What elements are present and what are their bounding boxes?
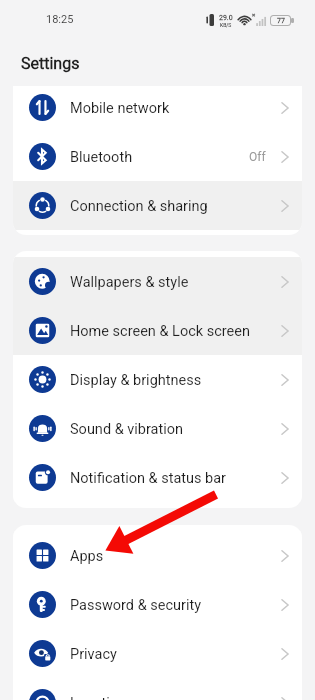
staticText: Apps (70, 548, 104, 565)
staticText: 29.0 (219, 14, 233, 22)
button[interactable]: Privacy (13, 629, 302, 678)
staticText: 77 (277, 17, 285, 25)
staticText: Settings (21, 54, 80, 73)
button[interactable]: Mobile network (13, 86, 302, 132)
staticText: Privacy (70, 646, 117, 663)
staticText: KB/S (220, 22, 232, 28)
staticText: Location (70, 695, 127, 700)
staticText: Notification & status bar (70, 470, 227, 487)
button[interactable]: Bluetooth (13, 132, 302, 181)
staticText: Bluetooth (70, 149, 133, 166)
staticText: Wallpapers & style (70, 274, 189, 291)
staticText: Sound & vibration (70, 421, 184, 438)
button[interactable]: Display & brightness (13, 355, 302, 404)
staticText: 18:25 (46, 13, 74, 26)
button[interactable]: Connection & sharing (13, 181, 302, 230)
button[interactable]: Notification & status bar (13, 453, 302, 502)
staticText: Connection & sharing (70, 198, 208, 215)
staticText: Off (249, 150, 266, 164)
button[interactable]: Sound & vibration (13, 404, 302, 453)
button[interactable]: Apps (13, 531, 302, 580)
button[interactable]: Wallpapers & style (13, 257, 302, 306)
button[interactable]: Password & security (13, 580, 302, 629)
staticText: Display & brightness (70, 372, 202, 389)
button[interactable]: Location (13, 678, 302, 700)
staticText: Mobile network (70, 100, 170, 117)
staticText: Password & security (70, 597, 202, 614)
button[interactable]: Home screen & Lock screen (13, 306, 302, 355)
staticText: Home screen & Lock screen (70, 323, 250, 340)
